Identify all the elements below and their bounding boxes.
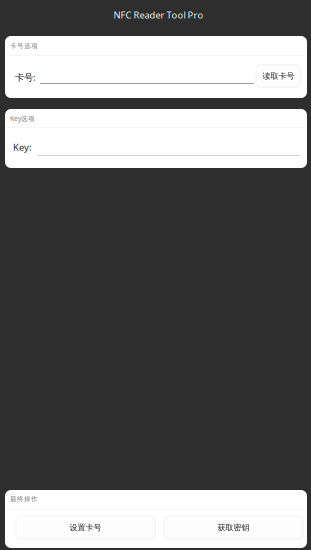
staticText: Key选项 — [10, 114, 35, 123]
staticText: 卡号选项 — [10, 42, 38, 50]
staticText: 获取密钥 — [217, 523, 249, 532]
staticText: 设置卡号 — [69, 523, 101, 532]
button[interactable]: 设置卡号 — [16, 516, 155, 539]
button[interactable]: Key: — [5, 128, 307, 160]
button[interactable]: 卡号: — [5, 56, 251, 89]
staticText: NFC Reader Tool Pro — [113, 9, 203, 21]
staticText: 读取卡号 — [262, 71, 294, 81]
staticText: 卡号: — [15, 71, 36, 83]
button[interactable]: 读取卡号 — [256, 65, 301, 87]
staticText: Key: — [13, 141, 32, 153]
staticText: 最终操作 — [10, 495, 38, 503]
button[interactable]: 获取密钥 — [164, 516, 303, 539]
